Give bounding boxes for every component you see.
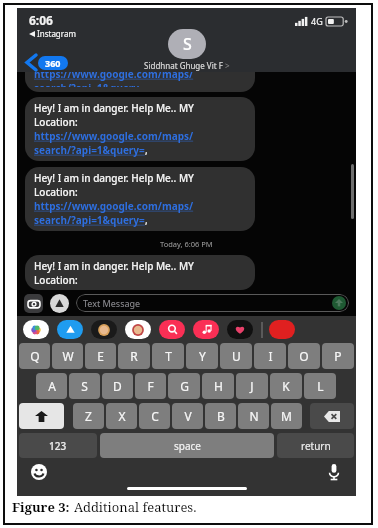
button[interactable]: App — [23, 320, 49, 339]
staticText: 4G — [311, 15, 323, 27]
button[interactable]: Hey! I am in danger. Help Me.. MY — [25, 255, 255, 290]
button[interactable]: A — [36, 373, 67, 399]
button[interactable]: Hey! I am in danger. Help Me.. MY — [25, 97, 255, 161]
button[interactable]: Back to 360 messages — [27, 55, 68, 70]
staticText: Siddhnat Ghuge Vit F — [144, 60, 223, 71]
button[interactable]: Dictation — [328, 464, 340, 480]
button[interactable]: G — [168, 373, 200, 399]
button[interactable]: Backspace — [310, 403, 354, 429]
staticText: https://www.google.com/maps/ — [34, 72, 194, 81]
staticText: X — [118, 408, 126, 424]
button[interactable]: Apps — [50, 294, 69, 313]
staticText: L — [317, 378, 324, 394]
button[interactable]: Z — [73, 403, 104, 429]
staticText: 6:06 — [29, 12, 53, 28]
button[interactable]: 123 — [19, 433, 97, 458]
button[interactable]: D — [102, 373, 133, 399]
staticText: T — [165, 348, 172, 364]
button[interactable]: P — [322, 343, 354, 369]
staticText: M — [281, 408, 292, 424]
button[interactable]: L — [304, 373, 336, 399]
staticText: B — [217, 408, 225, 424]
staticText: Today, 6:06 PM — [160, 239, 213, 249]
button[interactable]: App — [159, 320, 185, 339]
staticText: > — [225, 60, 230, 71]
staticText: search/?api=1&query= — [34, 143, 145, 157]
button[interactable]: App — [91, 320, 117, 339]
button[interactable]: App — [269, 320, 295, 339]
staticText: J — [250, 378, 254, 394]
button[interactable]: M — [271, 403, 302, 429]
button[interactable]: T — [152, 343, 184, 369]
staticText: https://www.google.com/maps/ — [34, 129, 194, 143]
staticText: P — [334, 348, 342, 364]
button[interactable]: H — [202, 373, 234, 399]
staticText: https://www.google.com/maps/ — [34, 199, 194, 213]
staticText: S — [183, 33, 192, 55]
button[interactable]: B — [205, 403, 236, 429]
staticText: N — [249, 408, 259, 424]
staticText: space — [174, 439, 201, 453]
staticText: Location: — [34, 273, 78, 286]
button[interactable]: J — [236, 373, 268, 399]
button[interactable]: K — [270, 373, 302, 399]
staticText: return — [301, 439, 331, 453]
staticText: I — [268, 348, 273, 364]
staticText: O — [299, 348, 309, 364]
button[interactable]: App — [125, 320, 151, 339]
button[interactable]: space — [100, 433, 274, 458]
staticText: G — [180, 378, 189, 394]
staticText: Hey! I am in danger. Help Me.. MY — [34, 171, 194, 185]
staticText: W — [62, 348, 74, 364]
staticText: K — [282, 378, 290, 394]
staticText: F — [147, 378, 154, 394]
staticText: Z — [85, 408, 92, 424]
staticText: Location: — [34, 185, 78, 199]
staticText: Hey! I am in danger. Help Me.. MY — [34, 101, 194, 115]
button[interactable]: Text Message — [76, 294, 349, 312]
button[interactable]: S — [69, 373, 100, 399]
staticText: S — [81, 378, 88, 394]
staticText: A — [48, 378, 56, 394]
staticText: Hey! I am in danger. Help Me.. MY — [34, 259, 194, 273]
button[interactable]: V — [172, 403, 203, 429]
button[interactable]: S — [144, 29, 230, 71]
button[interactable]: App — [193, 320, 219, 339]
staticText: Location: — [34, 115, 78, 129]
staticText: Y — [199, 348, 206, 364]
button[interactable]: Y — [186, 343, 218, 369]
staticText: 123 — [49, 439, 67, 453]
staticText: Q — [30, 348, 40, 364]
staticText: , — [145, 213, 148, 227]
button[interactable]: Q — [19, 343, 50, 369]
button[interactable]: O — [288, 343, 320, 369]
staticText: C — [151, 408, 159, 424]
button[interactable]: Shift — [19, 403, 64, 429]
button[interactable]: Send — [332, 296, 346, 310]
button[interactable]: R — [118, 343, 150, 369]
button[interactable]: Camera — [24, 294, 43, 313]
button[interactable]: Hey! I am in danger. Help Me.. MY — [25, 167, 255, 231]
staticText: search/?api=1&query=, — [34, 81, 148, 87]
button[interactable]: N — [238, 403, 269, 429]
button[interactable]: E — [85, 343, 116, 369]
staticText: , — [145, 143, 148, 157]
button[interactable]: I — [254, 343, 286, 369]
staticText: Figure 3: — [12, 498, 70, 516]
button[interactable]: App — [227, 320, 253, 339]
button[interactable]: X — [106, 403, 137, 429]
button[interactable]: return — [277, 433, 354, 458]
staticText: 360 — [45, 57, 61, 69]
button[interactable]: App — [57, 320, 83, 339]
button[interactable]: U — [220, 343, 252, 369]
button[interactable]: C — [139, 403, 170, 429]
staticText: U — [232, 348, 241, 364]
button[interactable]: W — [52, 343, 83, 369]
button[interactable]: https://www.google.com/maps/ — [25, 72, 255, 92]
staticText: D — [113, 378, 122, 394]
staticText: H — [214, 378, 223, 394]
staticText: R — [130, 348, 138, 364]
staticText: E — [97, 348, 104, 364]
button[interactable]: F — [135, 373, 166, 399]
button[interactable]: Emoji — [31, 464, 47, 480]
